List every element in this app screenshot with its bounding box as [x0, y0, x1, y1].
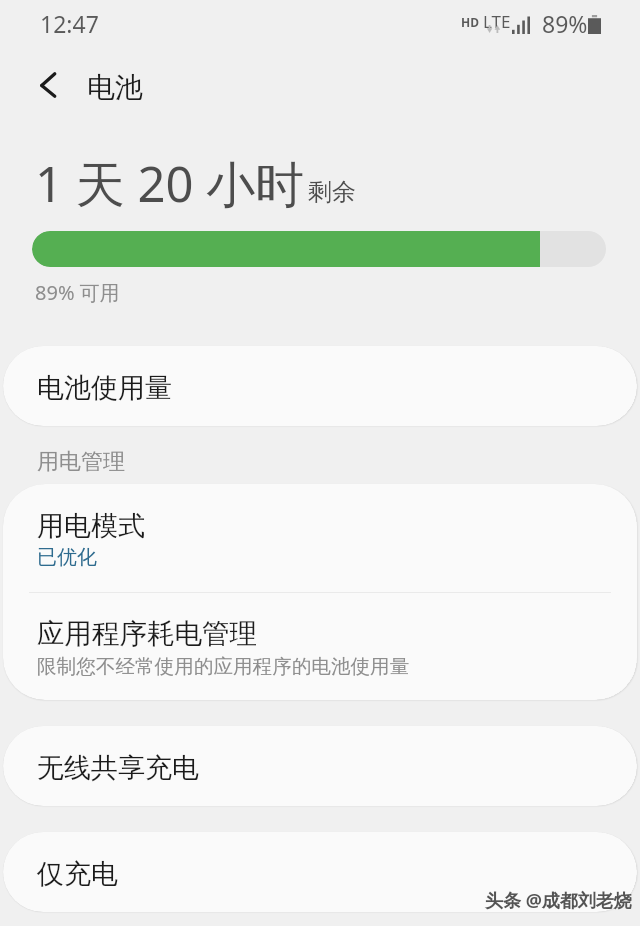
- staticText: 应用程序耗电管理: [37, 617, 257, 652]
- staticText: 剩余: [308, 177, 356, 207]
- staticText: 已优化: [37, 545, 97, 570]
- staticText: 仅充电: [37, 857, 118, 891]
- staticText: 限制您不经常使用的应用程序的电池使用量: [37, 654, 410, 679]
- staticText: 无线共享充电: [37, 751, 199, 785]
- staticText: 电池使用量: [37, 371, 172, 405]
- button[interactable]: 无线共享充电: [3, 726, 637, 806]
- button[interactable]: 应用程序耗电管理: [3, 593, 637, 700]
- button[interactable]: 电池使用量: [3, 346, 637, 426]
- staticText: 89% 可用: [35, 279, 120, 306]
- staticText: 用电管理: [37, 448, 125, 476]
- staticText: 电池: [87, 70, 143, 105]
- staticText: LTE: [483, 10, 511, 33]
- staticText: 89%: [542, 8, 588, 39]
- staticText: 头条 @成都刘老烧: [485, 888, 632, 913]
- staticText: 用电模式: [37, 509, 145, 543]
- staticText: HD: [461, 14, 479, 30]
- staticText: 1 天 20 小时: [35, 150, 305, 217]
- staticText: 12:47: [40, 8, 99, 39]
- button[interactable]: Back: [24, 61, 72, 109]
- button[interactable]: 用电模式: [3, 484, 637, 592]
- button[interactable]: 仅充电: [3, 832, 637, 912]
